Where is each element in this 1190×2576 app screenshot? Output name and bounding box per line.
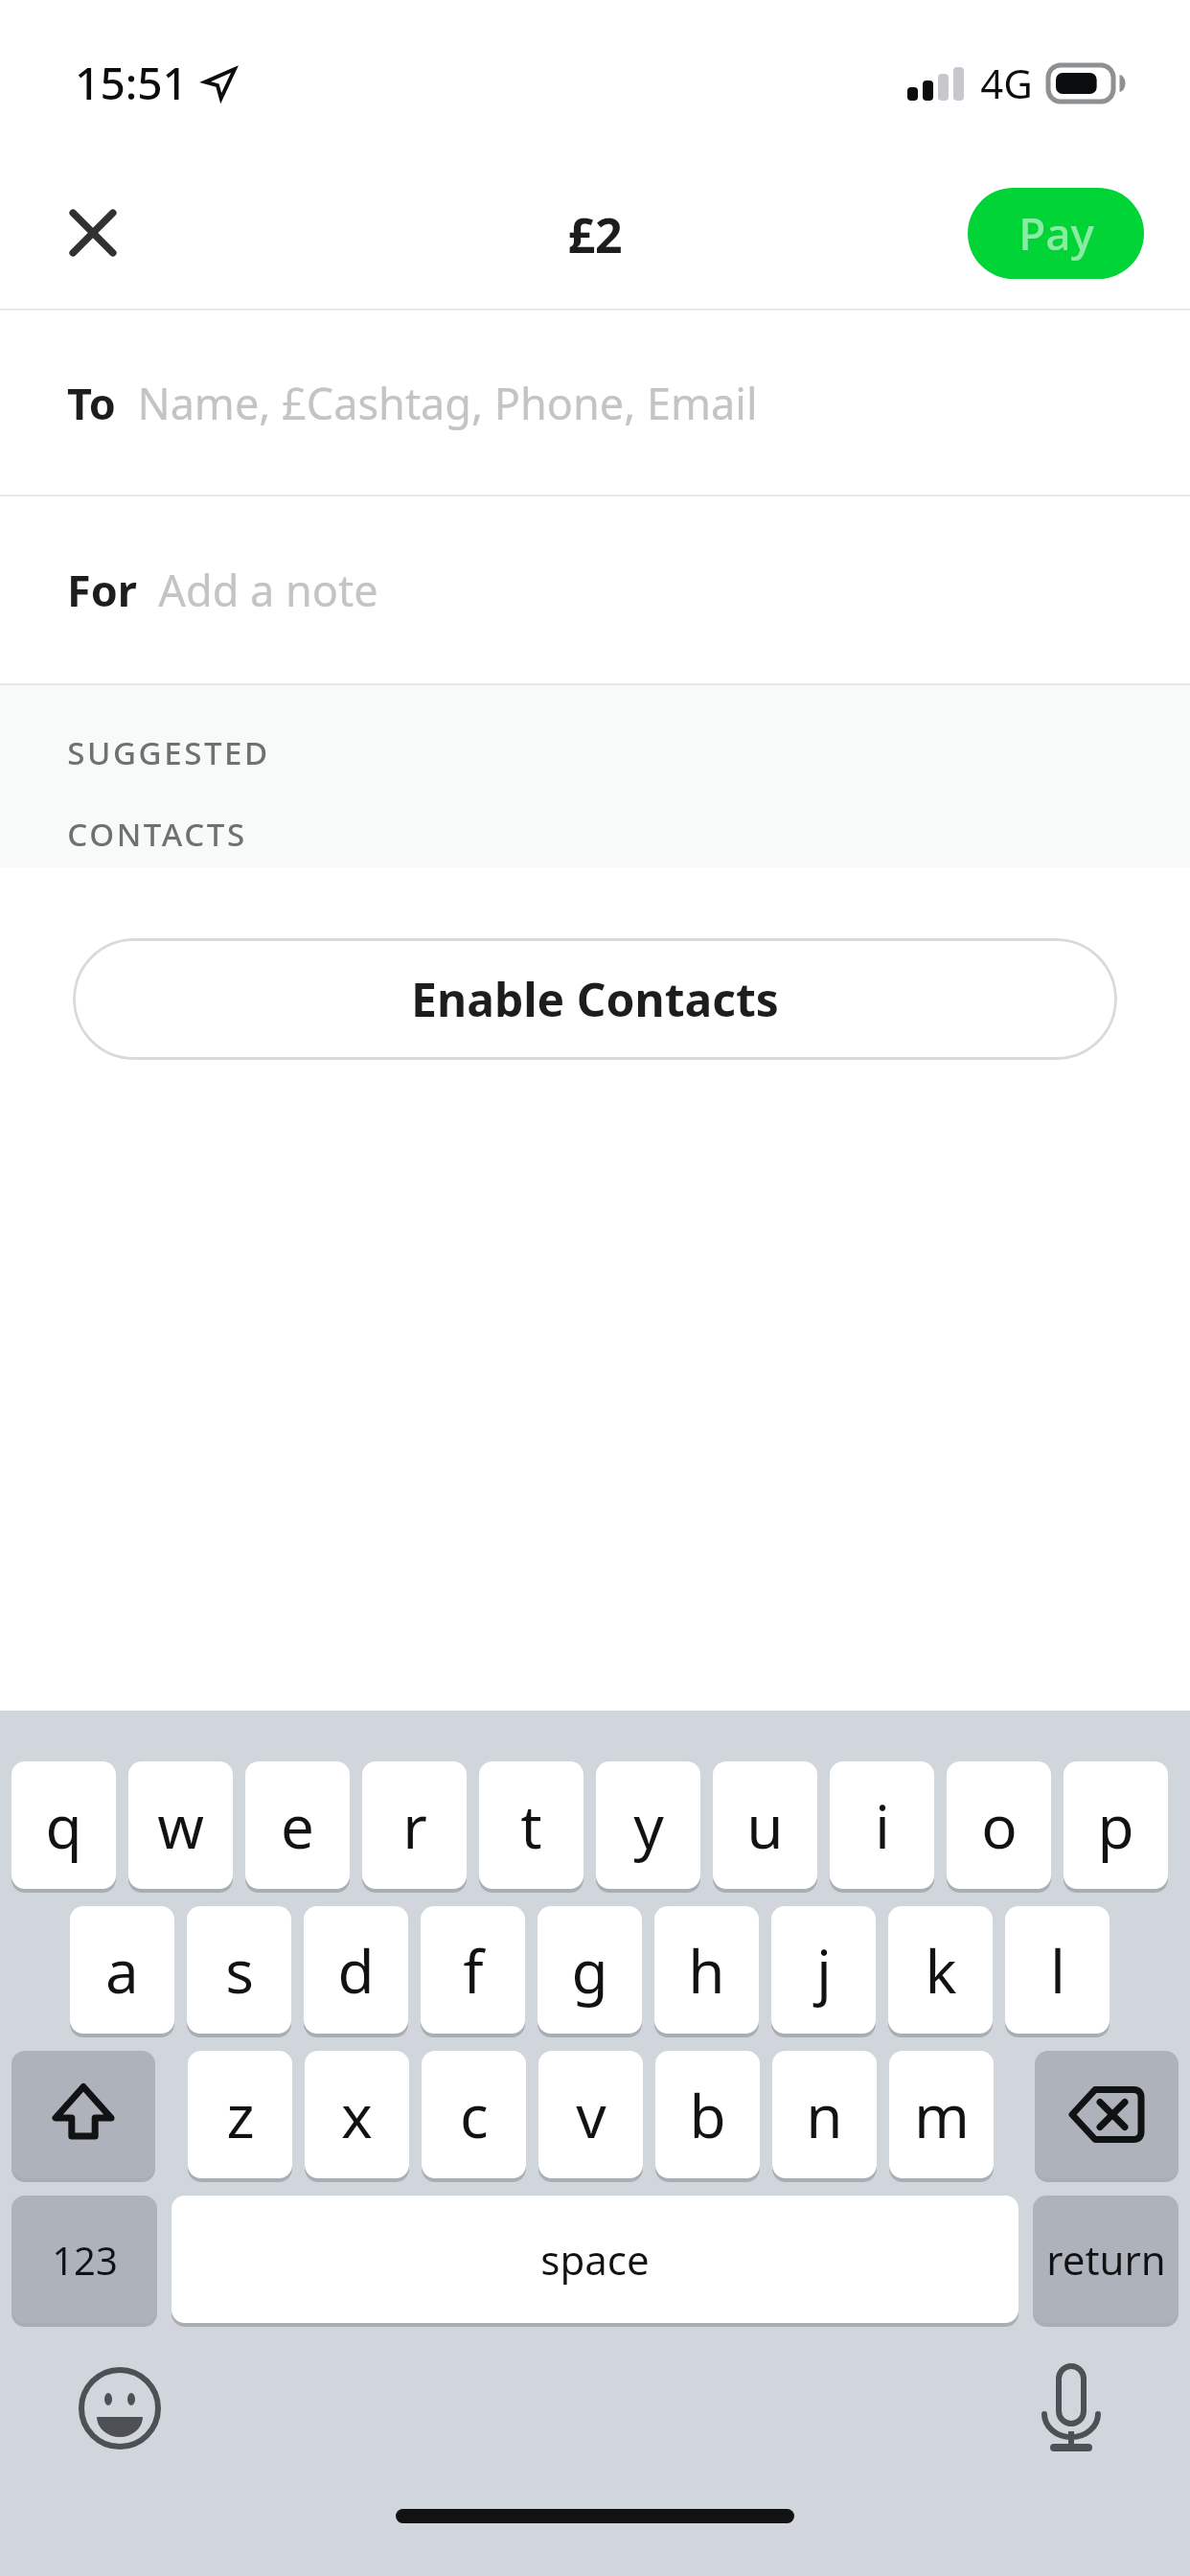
button[interactable]: Key b — [655, 2051, 760, 2178]
button[interactable]: Key k — [888, 1906, 993, 2034]
staticText: x — [341, 2075, 373, 2155]
staticText: j — [816, 1930, 832, 2011]
button[interactable]: g — [538, 1906, 642, 2034]
button[interactable]: r — [362, 1761, 467, 1889]
staticText: m — [914, 2075, 970, 2155]
staticText: h — [688, 1930, 725, 2011]
staticText: w — [157, 1785, 204, 1866]
staticText: SUGGESTED — [67, 731, 270, 774]
button[interactable]: Key a — [70, 1906, 174, 2034]
button[interactable]: a — [70, 1906, 174, 2034]
button[interactable]: Key t — [479, 1761, 584, 1889]
staticText: CONTACTS — [67, 813, 247, 856]
button[interactable]: o — [947, 1761, 1051, 1889]
staticText: n — [806, 2075, 843, 2155]
staticText: p — [1097, 1785, 1134, 1866]
button[interactable]: Key h — [654, 1906, 759, 2034]
button[interactable]: Key w — [128, 1761, 233, 1889]
button[interactable]: Dictation — [1029, 2366, 1113, 2450]
button[interactable]: d — [304, 1906, 408, 2034]
staticText: 15:51 — [75, 53, 188, 113]
button[interactable]: space — [172, 2196, 1018, 2323]
button[interactable]: Key c — [422, 2051, 526, 2178]
button[interactable]: Key d — [304, 1906, 408, 2034]
staticText: s — [225, 1930, 254, 2011]
staticText: l — [1050, 1930, 1065, 2011]
button[interactable]: y — [596, 1761, 700, 1889]
button[interactable]: Backspace — [1035, 2051, 1179, 2178]
button[interactable]: e — [245, 1761, 350, 1889]
staticText: Pay — [1018, 203, 1094, 264]
staticText: 4G — [980, 56, 1033, 110]
staticText: a — [105, 1930, 139, 2011]
button[interactable]: k — [888, 1906, 993, 2034]
button[interactable]: Key u — [713, 1761, 817, 1889]
staticText: To — [67, 374, 116, 432]
button[interactable]: Key f — [421, 1906, 525, 2034]
staticText: For — [67, 561, 137, 619]
button[interactable]: Key i — [830, 1761, 934, 1889]
button[interactable]: w — [128, 1761, 233, 1889]
button[interactable]: Close — [42, 182, 144, 284]
button[interactable]: n — [772, 2051, 877, 2178]
button[interactable]: Pay — [968, 188, 1144, 279]
staticText: v — [576, 2075, 606, 2155]
button[interactable]: To — [0, 310, 1190, 494]
button[interactable]: Key y — [596, 1761, 700, 1889]
button[interactable]: x — [305, 2051, 409, 2178]
button[interactable]: m — [889, 2051, 994, 2178]
staticText: u — [746, 1785, 784, 1866]
button[interactable]: Key e — [245, 1761, 350, 1889]
button[interactable]: For — [0, 496, 1190, 683]
button[interactable]: return — [1033, 2196, 1179, 2323]
button[interactable]: Key x — [305, 2051, 409, 2178]
button[interactable]: Shift — [11, 2051, 155, 2178]
staticText: o — [981, 1785, 1018, 1866]
button[interactable]: Key s — [187, 1906, 291, 2034]
button[interactable]: t — [479, 1761, 584, 1889]
staticText: return — [1046, 2232, 1166, 2287]
staticText: d — [337, 1930, 375, 2011]
staticText: g — [571, 1930, 608, 2011]
staticText: i — [875, 1785, 890, 1866]
staticText: Name, £Cashtag, Phone, Email — [137, 374, 758, 432]
staticText: y — [633, 1785, 664, 1866]
button[interactable]: u — [713, 1761, 817, 1889]
staticText: q — [45, 1785, 82, 1866]
button[interactable]: Key m — [889, 2051, 994, 2178]
staticText: 123 — [52, 2234, 118, 2286]
button[interactable]: l — [1005, 1906, 1110, 2034]
button[interactable]: Enable Contacts — [73, 938, 1117, 1060]
button[interactable]: Key g — [538, 1906, 642, 2034]
button[interactable]: Key z — [188, 2051, 292, 2178]
button[interactable]: v — [538, 2051, 643, 2178]
button[interactable]: Key n — [772, 2051, 877, 2178]
button[interactable]: Key l — [1005, 1906, 1110, 2034]
staticText: k — [925, 1930, 957, 2011]
staticText: f — [463, 1930, 484, 2011]
staticText: z — [226, 2075, 255, 2155]
button[interactable]: f — [421, 1906, 525, 2034]
button[interactable]: i — [830, 1761, 934, 1889]
button[interactable]: p — [1064, 1761, 1168, 1889]
button[interactable]: Emoji — [78, 2366, 162, 2450]
button[interactable]: j — [771, 1906, 876, 2034]
staticText: r — [402, 1785, 427, 1866]
button[interactable]: b — [655, 2051, 760, 2178]
button[interactable]: Key j — [771, 1906, 876, 2034]
button[interactable]: Key o — [947, 1761, 1051, 1889]
button[interactable]: z — [188, 2051, 292, 2178]
button[interactable]: Key q — [11, 1761, 116, 1889]
button[interactable]: Key p — [1064, 1761, 1168, 1889]
button[interactable]: 123 — [11, 2196, 157, 2323]
button[interactable]: s — [187, 1906, 291, 2034]
staticText: b — [689, 2075, 726, 2155]
button[interactable]: q — [11, 1761, 116, 1889]
button[interactable]: Key r — [362, 1761, 467, 1889]
staticText: Enable Contacts — [411, 968, 779, 1030]
staticText: space — [540, 2232, 650, 2287]
button[interactable]: Key v — [538, 2051, 643, 2178]
button[interactable]: h — [654, 1906, 759, 2034]
button[interactable]: c — [422, 2051, 526, 2178]
staticText: Add a note — [158, 561, 378, 619]
